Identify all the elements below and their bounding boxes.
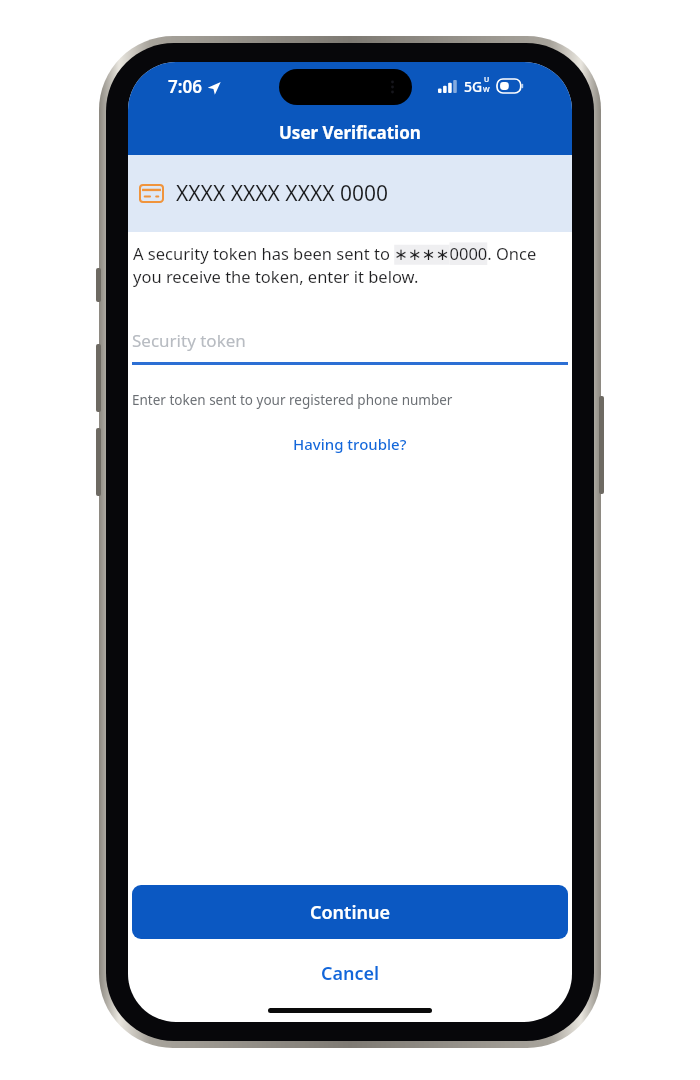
staticText: 7:06	[168, 75, 202, 98]
staticText: User Verification	[279, 121, 421, 144]
other: Card	[140, 185, 163, 202]
button[interactable]: Having trouble?	[283, 430, 417, 458]
staticText: U	[484, 75, 490, 85]
staticText: Security token	[132, 329, 246, 352]
staticText: 5G	[464, 77, 483, 96]
staticText: Continue	[310, 900, 390, 925]
button[interactable]: Card	[128, 155, 572, 232]
staticText: A security token has been sent to ∗∗∗∗00…	[133, 242, 567, 288]
staticText: W	[483, 85, 490, 95]
button[interactable]: Continue	[132, 885, 568, 939]
button[interactable]: Security token	[132, 318, 568, 362]
button[interactable]: Cancel	[305, 955, 396, 992]
staticText: Enter token sent to your registered phon…	[132, 391, 453, 409]
staticText: Having trouble?	[293, 434, 407, 454]
staticText: Cancel	[321, 961, 380, 986]
staticText: XXXX XXXX XXXX 0000	[176, 179, 389, 208]
